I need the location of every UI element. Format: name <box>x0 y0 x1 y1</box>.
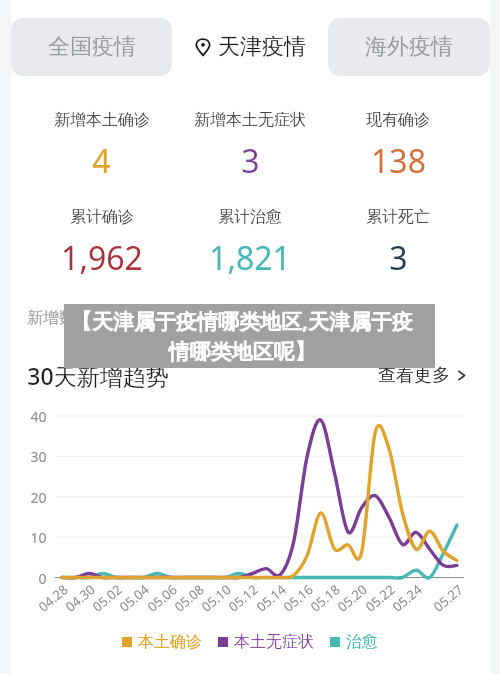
staticText: 新增数据统计(5月28日更新) <box>27 306 225 328</box>
staticText: 04.30 <box>61 580 99 616</box>
button[interactable]: 新增本土无症状 <box>176 110 324 183</box>
button[interactable]: 新增本土确诊 <box>27 110 176 183</box>
staticText: 现有确诊 <box>366 110 430 130</box>
staticText: 05.22 <box>361 580 399 616</box>
button[interactable]: 海外疫情 <box>328 18 490 76</box>
staticText: 05.18 <box>306 580 344 616</box>
button[interactable]: 累计死亡 <box>324 207 472 280</box>
staticText: 10 <box>30 528 47 547</box>
button[interactable]: 现有确诊 <box>324 110 472 183</box>
staticText: 05.02 <box>88 580 126 616</box>
staticText: 查看更多 <box>378 364 450 387</box>
staticText: 累计治愈 <box>218 207 282 227</box>
button[interactable]: 治愈 <box>330 632 378 652</box>
button[interactable]: 累计确诊 <box>27 207 176 280</box>
staticText: 累计死亡 <box>366 207 430 227</box>
staticText: 05.24 <box>388 580 426 616</box>
staticText: 1,962 <box>61 236 143 280</box>
staticText: 1,821 <box>209 236 291 280</box>
staticText: 新增本土确诊 <box>54 110 150 130</box>
staticText: 新增本土无症状 <box>194 110 306 130</box>
button[interactable]: 天津疫情 <box>172 18 328 76</box>
staticText: 05.06 <box>143 580 181 616</box>
staticText: 30天新增趋势 <box>27 360 169 391</box>
staticText: 05.14 <box>252 580 290 616</box>
button[interactable]: 本土无症状 <box>218 632 314 652</box>
button[interactable]: 全国疫情 <box>11 18 172 76</box>
staticText: 【天津属于疫情哪类地区,天津属于疫情哪类地区呢】 <box>66 307 418 365</box>
staticText: 3 <box>389 236 408 280</box>
staticText: 天津疫情 <box>218 33 306 61</box>
staticText: 05.12 <box>224 580 262 616</box>
staticText: 本土无症状 <box>234 632 314 652</box>
staticText: 138 <box>371 139 426 183</box>
button[interactable]: 本土确诊 <box>122 632 202 652</box>
staticText: 4 <box>92 139 111 183</box>
staticText: 3 <box>241 139 260 183</box>
staticText: 0 <box>38 569 47 588</box>
staticText: 04.28 <box>34 580 72 616</box>
staticText: 治愈 <box>346 632 378 652</box>
staticText: 05.27 <box>429 580 467 616</box>
staticText: 20 <box>30 488 47 507</box>
staticText: 05.08 <box>170 580 208 616</box>
staticText: 05.16 <box>279 580 317 616</box>
staticText: 累计确诊 <box>70 207 134 227</box>
staticText: 05.10 <box>197 580 235 616</box>
button[interactable]: 累计治愈 <box>176 207 324 280</box>
staticText: 海外疫情 <box>365 33 453 61</box>
staticText: 全国疫情 <box>48 33 136 61</box>
staticText: 05.04 <box>115 580 153 616</box>
staticText: 本土确诊 <box>138 632 202 652</box>
staticText: 05.20 <box>333 580 371 616</box>
staticText: 30 <box>30 447 47 466</box>
staticText: 40 <box>30 407 47 426</box>
button[interactable]: 查看更多 <box>378 364 467 387</box>
